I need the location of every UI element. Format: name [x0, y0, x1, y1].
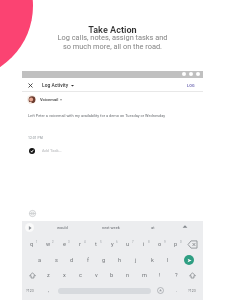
button[interactable]: y [105, 238, 119, 251]
staticText: ? [175, 272, 178, 279]
staticText: 0 [180, 240, 182, 243]
button[interactable]: k [145, 254, 159, 267]
staticText: at [151, 225, 155, 230]
staticText: w [46, 241, 51, 248]
staticText: . [176, 288, 178, 293]
staticText: k [151, 257, 154, 264]
staticText: 9 [164, 240, 166, 243]
button[interactable]: g [97, 254, 111, 267]
button[interactable]: d [65, 254, 79, 267]
staticText: b [110, 272, 114, 279]
staticText: j [135, 257, 137, 264]
staticText: r [79, 241, 81, 248]
button[interactable]: o [153, 238, 167, 251]
staticText: m [142, 272, 147, 279]
staticText: l [167, 257, 169, 264]
button[interactable]: m [137, 269, 151, 282]
button[interactable]: next week [95, 223, 127, 232]
button[interactable]: c [73, 269, 87, 282]
button[interactable]: More suggestions [182, 224, 188, 230]
staticText: 4 [84, 240, 86, 243]
staticText: Left Peter a voicemail with my availabil… [28, 113, 166, 118]
staticText: g [102, 257, 106, 264]
button[interactable]: b [105, 269, 119, 282]
button[interactable]: , [40, 285, 56, 296]
button[interactable]: Add Task... [22, 145, 203, 157]
button[interactable]: Send [184, 255, 194, 265]
button[interactable]: n [121, 269, 135, 282]
staticText: , [48, 288, 49, 293]
staticText: p [174, 241, 178, 248]
staticText: i [143, 241, 145, 248]
button[interactable]: at [137, 223, 169, 232]
staticText: c [79, 272, 82, 279]
button[interactable]: Voice input [25, 223, 34, 232]
button[interactable]: Close [22, 78, 203, 91]
button[interactable]: u [121, 238, 135, 251]
button[interactable]: j [129, 254, 143, 267]
button[interactable]: ! [153, 269, 167, 282]
staticText: d [70, 257, 74, 264]
staticText: Log Activity [42, 82, 69, 88]
staticText: ! [159, 272, 161, 279]
button[interactable]: z [41, 269, 55, 282]
button[interactable]: ? [169, 269, 183, 282]
staticText: 2 [52, 240, 54, 243]
staticText: Voicemail [40, 97, 59, 102]
staticText: ?123 [188, 289, 196, 293]
button[interactable]: x [57, 269, 71, 282]
staticText: n [126, 272, 130, 279]
button[interactable]: Voicemail [22, 93, 203, 106]
staticText: would [57, 225, 68, 230]
staticText: s [55, 257, 58, 264]
button[interactable]: q [25, 238, 39, 251]
button[interactable]: ?123 [184, 285, 200, 296]
staticText: y [111, 241, 114, 248]
button[interactable]: Backspace [188, 240, 197, 249]
button[interactable]: l [161, 254, 175, 267]
button[interactable]: r [73, 238, 87, 251]
staticText: a [38, 257, 42, 264]
staticText: 7 [132, 240, 134, 243]
button[interactable]: Microphone [157, 287, 164, 294]
button[interactable]: v [89, 269, 103, 282]
button[interactable]: Shift [29, 272, 36, 279]
staticText: ?123 [26, 289, 34, 293]
staticText: q [30, 241, 34, 248]
staticText: t [95, 241, 97, 248]
staticText: h [118, 257, 122, 264]
button[interactable]: s [49, 254, 63, 267]
staticText: 1 [36, 240, 38, 243]
other: Close [28, 83, 33, 88]
staticText: Take Action [0, 25, 225, 36]
staticText: x [63, 272, 66, 279]
staticText: 8 [148, 240, 150, 243]
staticText: e [63, 241, 66, 248]
button[interactable]: Emoji [29, 210, 36, 217]
button[interactable]: e [57, 238, 71, 251]
button[interactable]: i [137, 238, 151, 251]
staticText: z [47, 272, 50, 279]
staticText: f [87, 257, 89, 264]
staticText: 6 [116, 240, 118, 243]
staticText: LOG [187, 83, 195, 87]
staticText: Log calls, notes, assign tasks and so mu… [0, 33, 225, 51]
button[interactable]: Shift [189, 272, 196, 279]
button[interactable]: t [89, 238, 103, 251]
staticText: Add Task... [42, 148, 62, 153]
button[interactable]: would [46, 223, 78, 232]
staticText: 3 [68, 240, 70, 243]
button[interactable]: p [169, 238, 183, 251]
staticText: u [126, 241, 130, 248]
button[interactable]: a [33, 254, 47, 267]
staticText: o [158, 241, 162, 248]
button[interactable]: f [81, 254, 95, 267]
button[interactable]: ?123 [22, 285, 38, 296]
button[interactable]: h [113, 254, 127, 267]
staticText: v [95, 272, 98, 279]
staticText: 12:01 PM [28, 136, 43, 140]
button[interactable]: w [41, 238, 55, 251]
staticText: 5 [100, 240, 102, 243]
